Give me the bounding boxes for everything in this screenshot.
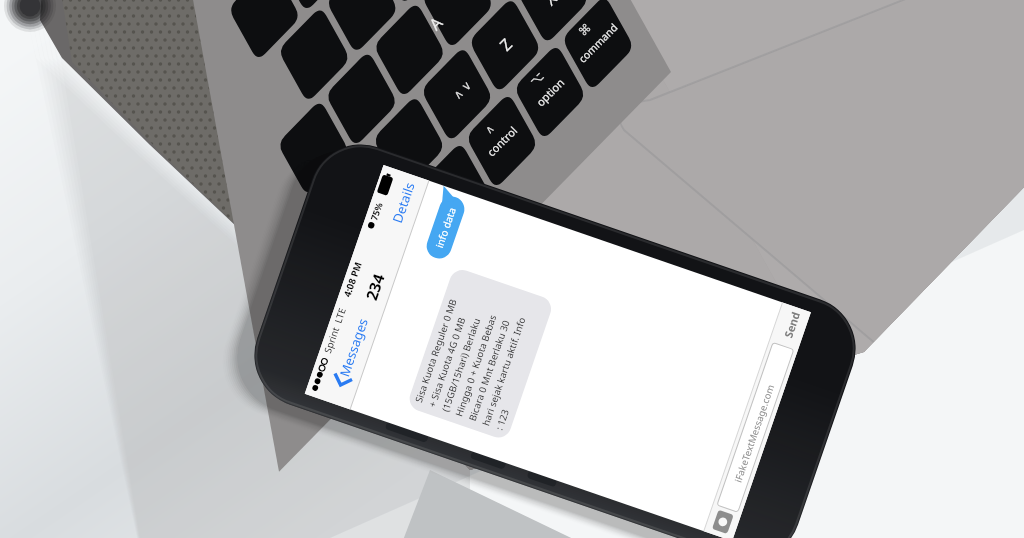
button[interactable]: Sent message: info data — [412, 186, 470, 256]
button[interactable]: Attach photo — [690, 486, 744, 538]
button[interactable]: Send — [752, 290, 822, 354]
button[interactable]: Message input field — [630, 366, 780, 506]
button[interactable]: Back to Messages — [300, 330, 370, 400]
button[interactable]: Received message from 234 — [398, 262, 548, 432]
button[interactable]: Details — [384, 165, 430, 217]
